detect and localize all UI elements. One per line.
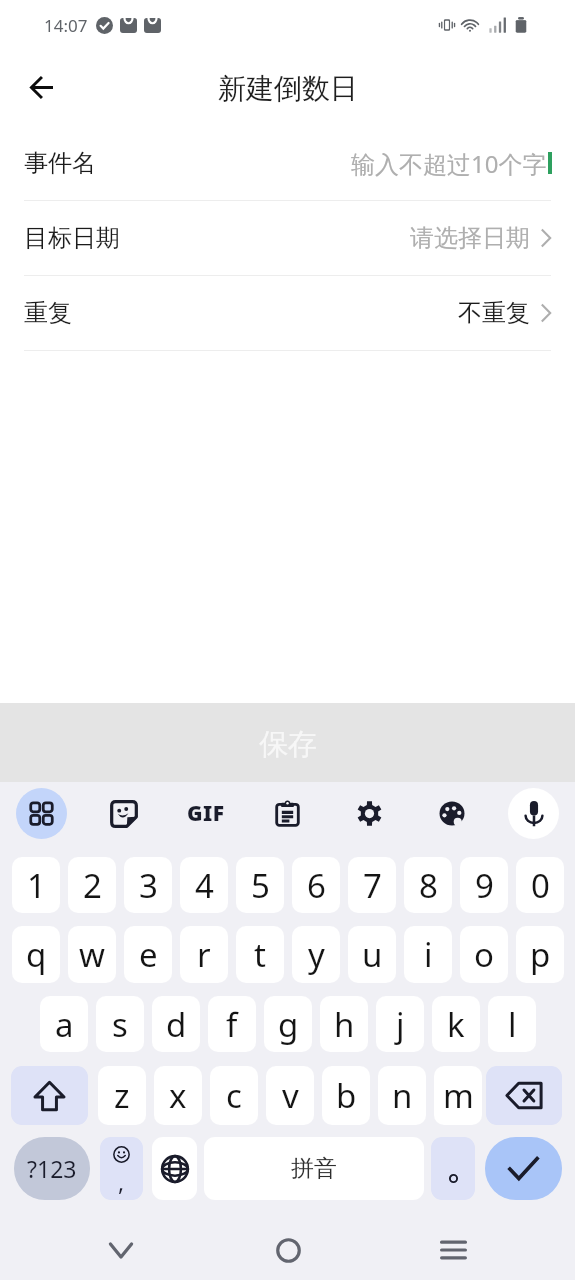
button[interactable]: 9 — [460, 857, 508, 913]
button[interactable]: ?123 — [14, 1137, 90, 1200]
staticText: 请选择日期 — [410, 223, 530, 253]
staticText: 拼音 — [291, 1154, 337, 1183]
button[interactable]: Recents — [423, 1223, 483, 1277]
button[interactable]: Shift — [11, 1066, 88, 1125]
button[interactable]: Switch language — [152, 1137, 197, 1200]
button[interactable]: 重复 — [0, 276, 575, 350]
button[interactable]: Home — [258, 1223, 318, 1277]
button[interactable]: GIF — [180, 788, 231, 839]
button[interactable]: Period — [431, 1137, 475, 1200]
button[interactable]: u — [348, 926, 396, 983]
button[interactable]: Backspace — [486, 1066, 562, 1125]
button[interactable]: z — [98, 1066, 146, 1125]
button[interactable]: 事件名 — [0, 126, 575, 200]
staticText: 5 — [251, 863, 270, 908]
staticText: e — [139, 932, 158, 977]
button[interactable]: 3 — [124, 857, 172, 913]
button[interactable]: f — [208, 996, 256, 1052]
button[interactable]: 拼音 — [204, 1137, 424, 1200]
staticText: 事件名 — [24, 148, 96, 178]
button[interactable]: p — [516, 926, 564, 983]
staticText: b — [336, 1073, 357, 1118]
staticText: d — [166, 1002, 187, 1047]
staticText: k — [447, 1002, 465, 1047]
button[interactable]: Voice input — [508, 788, 559, 839]
button[interactable]: y — [292, 926, 340, 983]
button[interactable]: 目标日期 — [0, 201, 575, 275]
button[interactable]: Apps — [16, 788, 67, 839]
button[interactable]: g — [264, 996, 312, 1052]
staticText: 14:07 — [44, 14, 88, 37]
staticText: n — [392, 1073, 413, 1118]
button[interactable]: e — [124, 926, 172, 983]
button[interactable]: 7 — [348, 857, 396, 913]
button[interactable]: m — [434, 1066, 482, 1125]
button[interactable]: n — [378, 1066, 426, 1125]
button[interactable]: 4 — [180, 857, 228, 913]
button[interactable]: Back — [14, 60, 68, 114]
staticText: 不重复 — [458, 298, 530, 328]
button[interactable]: s — [96, 996, 144, 1052]
staticText: l — [508, 1002, 517, 1047]
staticText: 7 — [363, 863, 382, 908]
button[interactable]: v — [266, 1066, 314, 1125]
button[interactable]: Enter — [485, 1137, 562, 1200]
button[interactable]: i — [404, 926, 452, 983]
button[interactable]: 1 — [12, 857, 60, 913]
staticText: 保存 — [259, 726, 317, 763]
button[interactable]: 0 — [516, 857, 564, 913]
staticText: 2 — [83, 863, 102, 908]
staticText: ?123 — [27, 1153, 77, 1184]
button[interactable]: x — [154, 1066, 202, 1125]
staticText: x — [169, 1073, 187, 1118]
staticText: y — [308, 932, 325, 977]
button[interactable]: h — [320, 996, 368, 1052]
staticText: z — [114, 1073, 130, 1118]
button[interactable]: 2 — [68, 857, 116, 913]
button[interactable]: w — [68, 926, 116, 983]
staticText: p — [530, 932, 551, 977]
staticText: 3 — [139, 863, 158, 908]
staticText: , — [118, 1166, 125, 1197]
button[interactable]: Hide keyboard — [91, 1223, 151, 1277]
staticText: 4 — [195, 863, 214, 908]
staticText: m — [443, 1073, 474, 1118]
staticText: a — [55, 1002, 74, 1047]
button[interactable]: 5 — [236, 857, 284, 913]
staticText: 目标日期 — [24, 223, 120, 253]
button[interactable]: d — [152, 996, 200, 1052]
button[interactable]: Clipboard — [262, 788, 313, 839]
staticText: 重复 — [24, 298, 72, 328]
button[interactable]: b — [322, 1066, 370, 1125]
button[interactable]: t — [236, 926, 284, 983]
staticText: 8 — [419, 863, 438, 908]
button[interactable]: , — [100, 1137, 143, 1200]
button[interactable]: 8 — [404, 857, 452, 913]
staticText: j — [396, 1002, 405, 1047]
button[interactable]: r — [180, 926, 228, 983]
button[interactable]: Stickers — [98, 788, 149, 839]
button[interactable]: 6 — [292, 857, 340, 913]
staticText: t — [254, 932, 266, 977]
button[interactable]: l — [488, 996, 536, 1052]
staticText: o — [474, 932, 494, 977]
staticText: s — [112, 1002, 128, 1047]
button[interactable]: Settings — [344, 788, 395, 839]
staticText: r — [197, 932, 211, 977]
button[interactable]: o — [460, 926, 508, 983]
button[interactable]: j — [376, 996, 424, 1052]
staticText: 新建倒数日 — [218, 71, 358, 106]
button[interactable]: k — [432, 996, 480, 1052]
button[interactable]: q — [12, 926, 60, 983]
staticText: i — [424, 932, 433, 977]
staticText: 1 — [27, 863, 46, 908]
button[interactable]: a — [40, 996, 88, 1052]
staticText: c — [226, 1073, 242, 1118]
button[interactable]: Theme — [426, 788, 477, 839]
staticText: GIF — [187, 799, 225, 828]
staticText: f — [226, 1002, 238, 1047]
staticText: 9 — [475, 863, 494, 908]
staticText: u — [362, 932, 383, 977]
button[interactable]: c — [210, 1066, 258, 1125]
